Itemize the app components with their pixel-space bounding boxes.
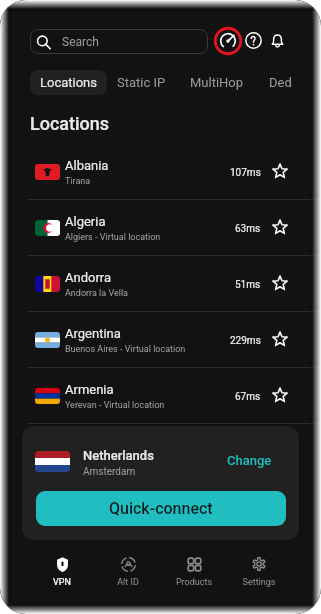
staticText: 63ms xyxy=(235,223,261,235)
button[interactable]: Locations xyxy=(30,70,107,95)
staticText: 51ms xyxy=(235,279,261,291)
button[interactable]: Notifications xyxy=(269,32,286,49)
button[interactable]: Ded xyxy=(269,70,292,95)
staticText: 67ms xyxy=(235,391,261,403)
staticText: 229ms xyxy=(230,335,261,347)
staticText: Andorra xyxy=(65,270,112,285)
staticText: MultiHop xyxy=(190,75,244,90)
button[interactable]: Static IP xyxy=(117,70,166,95)
staticText: Products xyxy=(162,577,226,588)
button[interactable]: Quick-connect xyxy=(36,491,286,526)
staticText: Locations xyxy=(30,113,110,134)
staticText: Andorra la Vella xyxy=(65,288,128,299)
button[interactable]: Armenia xyxy=(0,368,321,424)
button[interactable]: Algeria xyxy=(0,200,321,256)
button[interactable]: Search xyxy=(30,29,208,54)
button[interactable]: Products xyxy=(162,550,226,594)
staticText: Yerevan - Virtual location xyxy=(65,400,165,411)
staticText: VPN xyxy=(30,577,94,588)
button[interactable]: MultiHop xyxy=(190,70,244,95)
staticText: Netherlands xyxy=(83,448,154,463)
button[interactable]: Settings xyxy=(227,550,291,594)
staticText: Algeria xyxy=(65,214,106,229)
button[interactable]: Help xyxy=(245,32,262,49)
staticText: Static IP xyxy=(117,75,166,90)
staticText: Buenos Aires - Virtual location xyxy=(65,344,186,355)
button[interactable]: Argentina xyxy=(0,312,321,368)
button[interactable]: Speed test xyxy=(214,27,242,55)
staticText: Albania xyxy=(65,158,109,173)
staticText: Amsterdam xyxy=(83,466,136,478)
button[interactable]: Change xyxy=(221,448,278,472)
staticText: Alt ID xyxy=(96,577,160,588)
staticText: Armenia xyxy=(65,382,114,397)
staticText: Locations xyxy=(40,75,98,90)
staticText: Argentina xyxy=(65,326,121,341)
staticText: Search xyxy=(62,35,99,49)
staticText: Tirana xyxy=(65,176,91,187)
staticText: 107ms xyxy=(230,167,261,179)
button[interactable]: Albania xyxy=(0,144,321,200)
button[interactable]: VPN xyxy=(30,550,94,594)
staticText: Change xyxy=(227,453,272,468)
staticText: Ded xyxy=(269,75,292,90)
staticText: Settings xyxy=(227,577,291,588)
staticText: Algiers - Virtual location xyxy=(65,232,161,243)
button[interactable]: Andorra xyxy=(0,256,321,312)
button[interactable]: Alt ID xyxy=(96,550,160,594)
staticText: Quick-connect xyxy=(109,499,213,518)
